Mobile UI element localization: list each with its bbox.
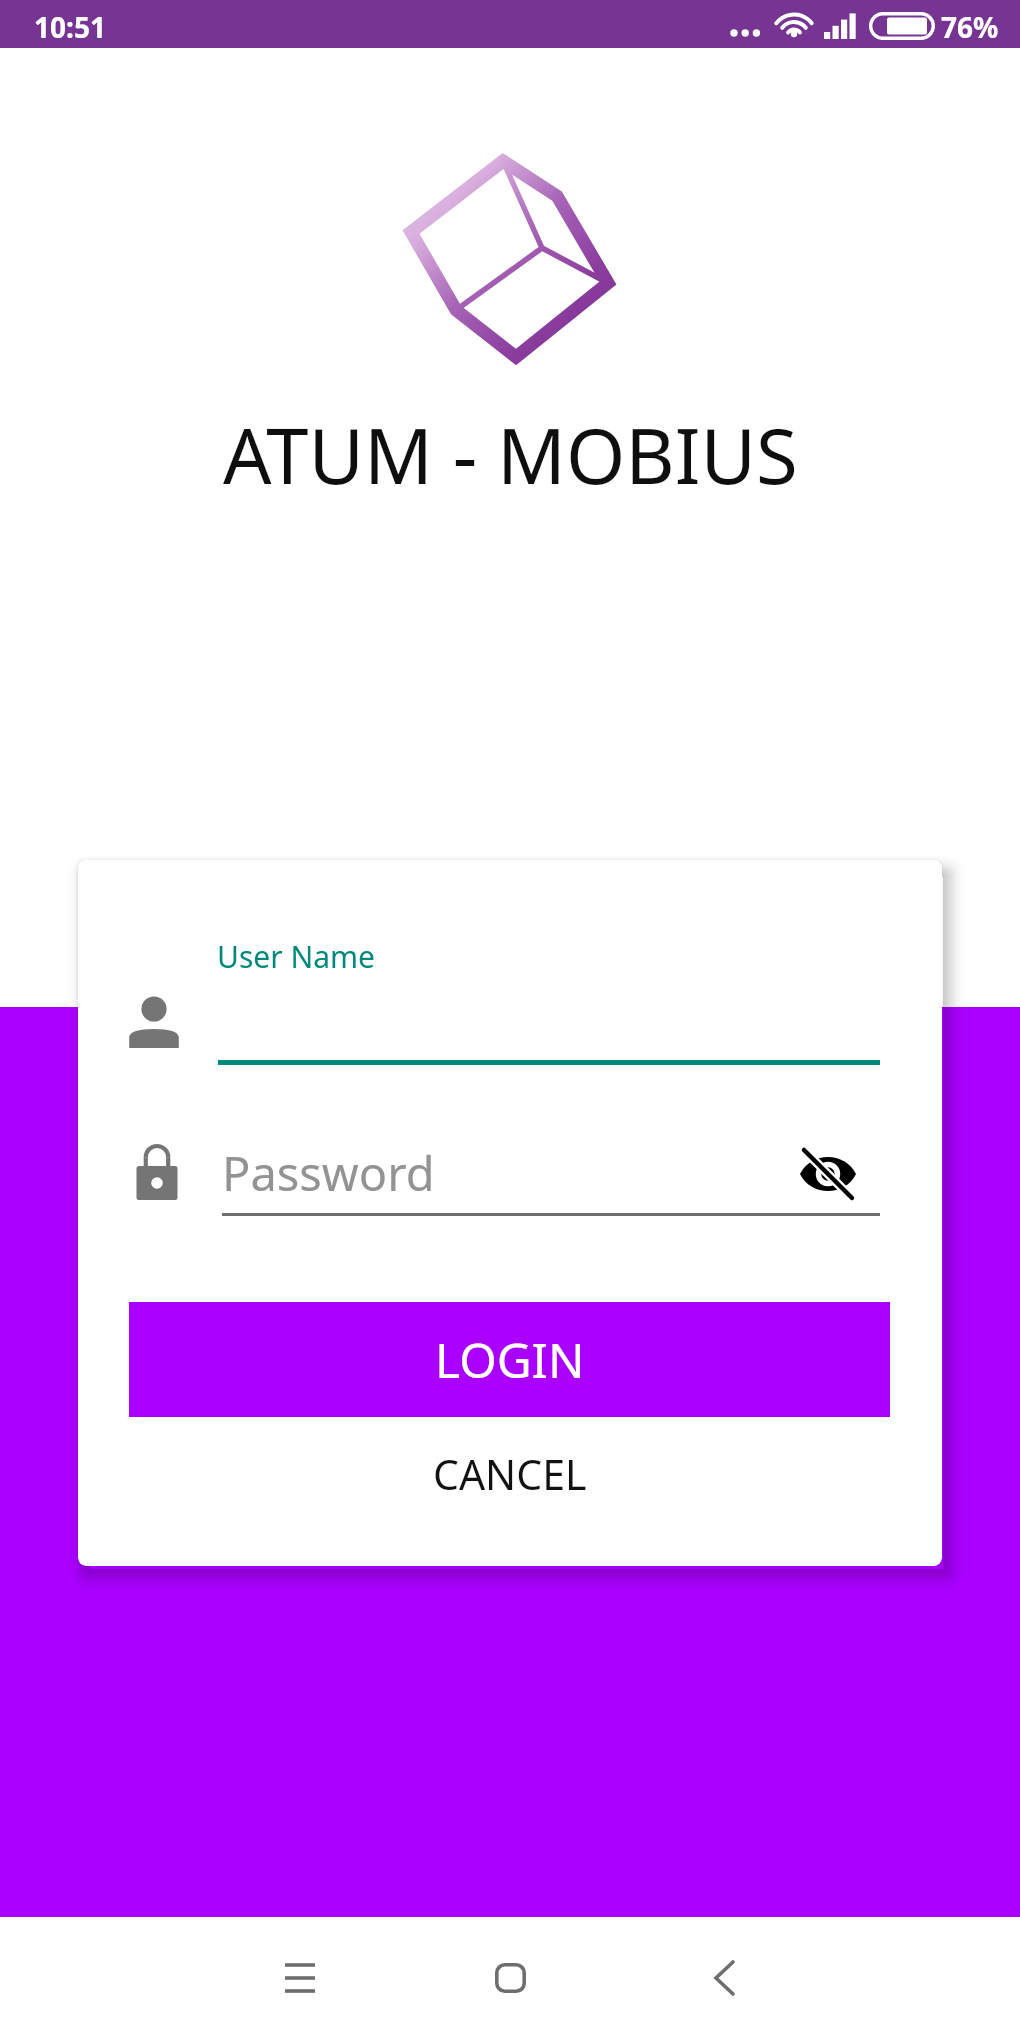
button[interactable]: Password [124,1125,914,1220]
button[interactable]: User Name [124,920,914,1070]
button[interactable]: Recent apps [255,1933,345,2023]
staticText: User Name [217,936,376,977]
button[interactable]: Home [465,1933,555,2023]
staticText: LOGIN [435,1327,585,1392]
button[interactable]: LOGIN [129,1302,890,1417]
staticText: ATUM - MOBIUS [223,403,798,507]
staticText: 76% [941,8,999,46]
staticText: CANCEL [433,1446,587,1502]
button[interactable]: CANCEL [129,1430,890,1518]
staticText: 10:51 [34,8,106,46]
staticText: Password [222,1141,435,1205]
button[interactable]: Show password [783,1129,873,1219]
button[interactable]: Back [679,1933,769,2023]
